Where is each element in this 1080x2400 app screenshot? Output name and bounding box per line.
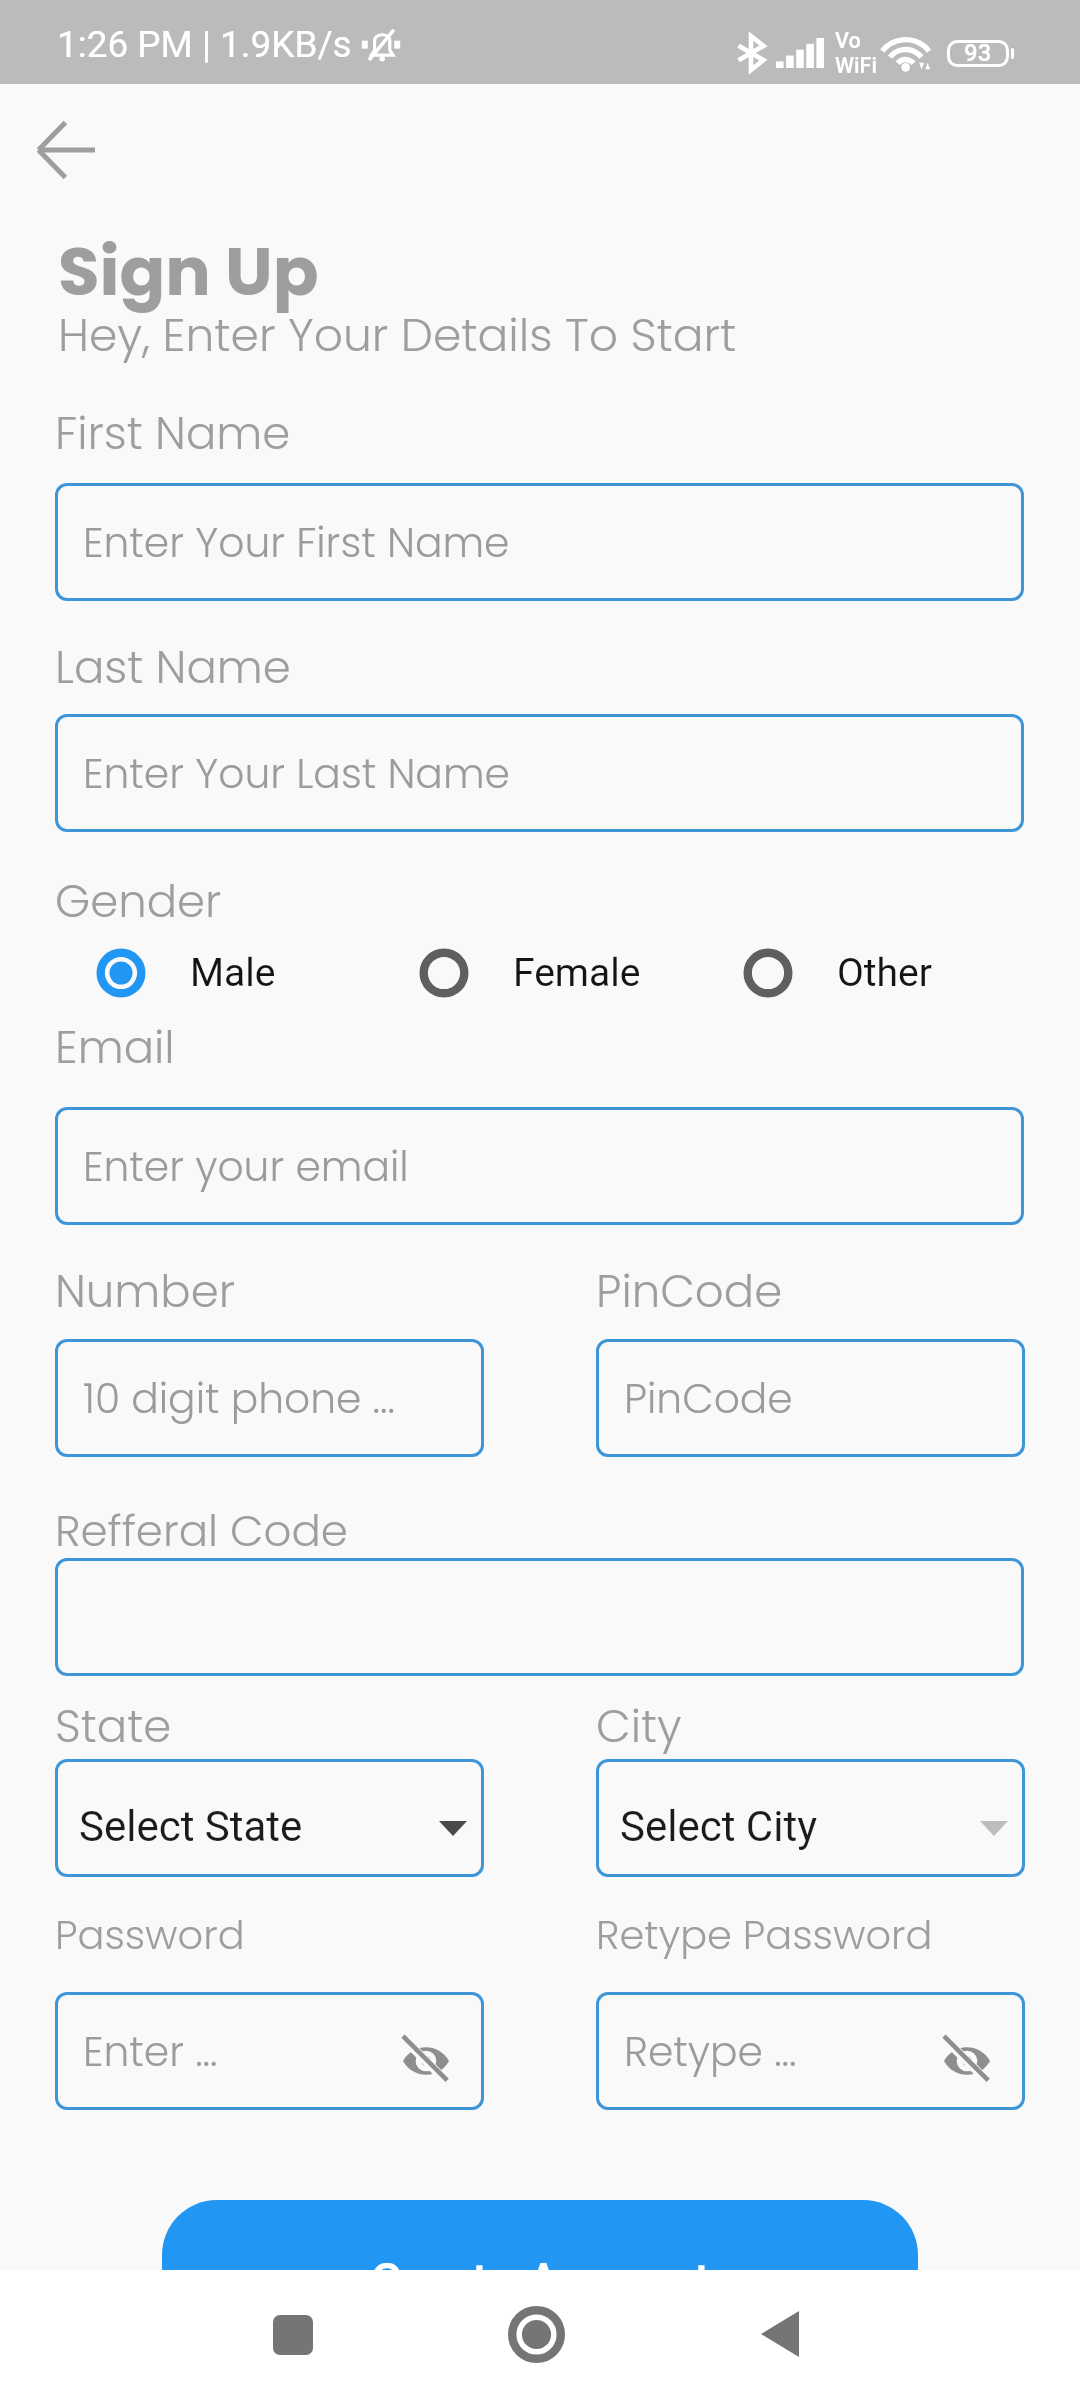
- staticText: PinCode: [624, 1370, 793, 1427]
- button[interactable]: Select State: [55, 1759, 484, 1877]
- button[interactable]: Enter Your Last Name: [55, 714, 1024, 832]
- staticText: 10 digit phone ...: [83, 1370, 395, 1427]
- staticText: Enter Your First Name: [83, 514, 510, 571]
- staticText: Retype Password: [596, 1907, 933, 1963]
- staticText: Hey, Enter Your Details To Start: [58, 303, 737, 367]
- button[interactable]: Enter Your First Name: [55, 483, 1024, 601]
- staticText: PinCode: [596, 1260, 783, 1323]
- staticText: City: [596, 1695, 682, 1758]
- staticText: Male: [190, 950, 276, 996]
- button[interactable]: Other: [714, 937, 932, 1009]
- staticText: Sign Up: [58, 224, 319, 319]
- staticText: Email: [55, 1016, 175, 1079]
- button[interactable]: PinCode: [596, 1339, 1025, 1457]
- button[interactable]: Back: [17, 101, 115, 199]
- staticText: 93: [964, 39, 992, 67]
- staticText: Retype ...: [624, 2023, 797, 2080]
- button[interactable]: Retype ...: [596, 1992, 1025, 2110]
- button[interactable]: 10 digit phone ...: [55, 1339, 484, 1457]
- staticText: 1:26 PM | 1.9KB/s: [57, 23, 352, 66]
- button[interactable]: Select City: [596, 1759, 1025, 1877]
- button[interactable]: Enter your email: [55, 1107, 1024, 1225]
- button[interactable]: Back: [761, 2311, 799, 2357]
- staticText: Select City: [620, 1802, 817, 1851]
- staticText: Number: [55, 1260, 236, 1323]
- staticText: Enter ...: [83, 2023, 218, 2080]
- button[interactable]: Create Account: [162, 2200, 918, 2364]
- button[interactable]: [55, 1558, 1024, 1676]
- button[interactable]: Home: [508, 2306, 565, 2363]
- staticText: Select State: [79, 1802, 303, 1851]
- staticText: Create Account: [370, 2253, 711, 2311]
- staticText: Other: [837, 950, 932, 996]
- button[interactable]: Male: [67, 937, 276, 1009]
- staticText: Password: [55, 1907, 245, 1963]
- staticText: WiFi: [835, 53, 877, 78]
- staticText: Last Name: [55, 636, 291, 699]
- staticText: Enter Your Last Name: [83, 745, 510, 802]
- staticText: State: [55, 1695, 172, 1758]
- button[interactable]: Recent apps: [273, 2315, 313, 2355]
- button[interactable]: Enter ...: [55, 1992, 484, 2110]
- staticText: Vo: [835, 28, 861, 53]
- staticText: Gender: [55, 870, 222, 933]
- staticText: Refferal Code: [55, 1500, 348, 1561]
- staticText: Female: [513, 950, 641, 996]
- staticText: First Name: [55, 402, 291, 465]
- staticText: Enter your email: [83, 1138, 409, 1195]
- button[interactable]: Show password: [386, 2011, 466, 2091]
- button[interactable]: Show password: [927, 2011, 1007, 2091]
- button[interactable]: Female: [390, 937, 641, 1009]
